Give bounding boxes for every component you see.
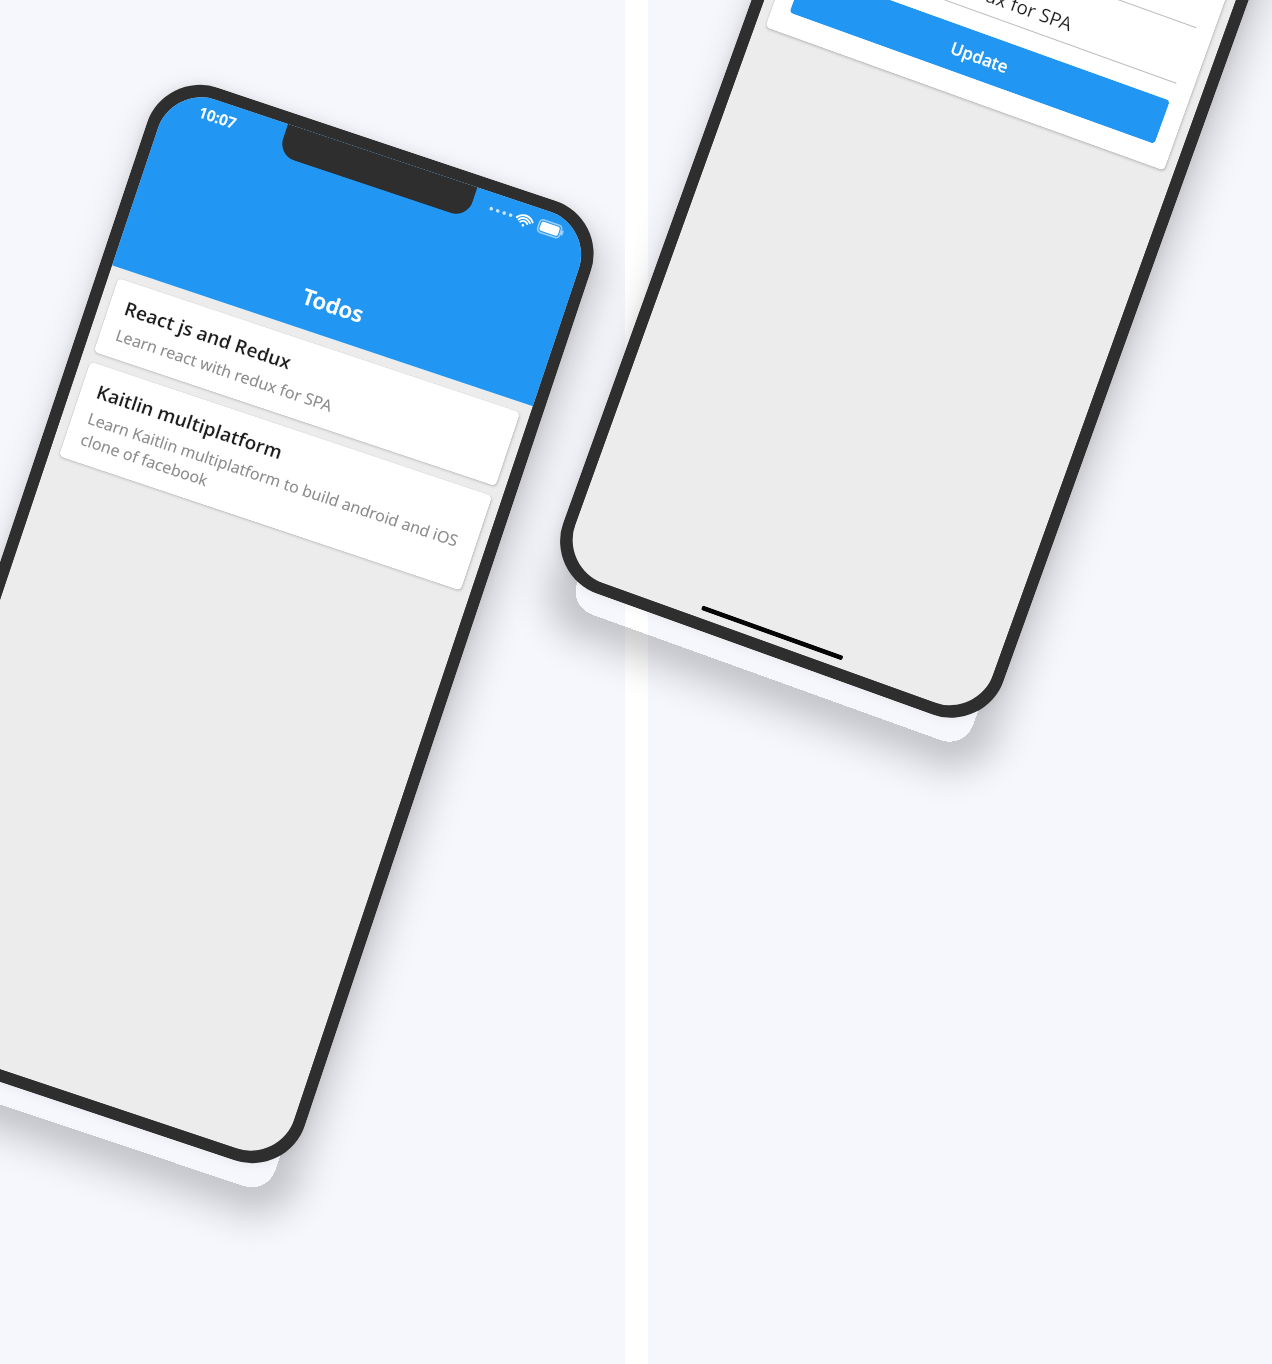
staticText: Learn Kaitlin multiplatform to build and… xyxy=(78,407,464,573)
button[interactable]: Update xyxy=(789,0,1170,144)
staticText: React js and Redux xyxy=(121,295,295,375)
button[interactable]: Kaitlin multiplatform xyxy=(59,361,492,591)
staticText: Learn react with redux for SPA xyxy=(113,324,335,417)
button[interactable]: Todo xyxy=(831,0,1214,28)
staticText: Kaitlin multiplatform xyxy=(93,379,286,465)
staticText: 10:07 xyxy=(196,102,239,133)
staticText: Todos xyxy=(299,280,368,329)
button[interactable]: Description xyxy=(811,0,1194,84)
staticText: Update xyxy=(947,36,1012,78)
staticText: Learn react with redux for SPA xyxy=(813,0,1076,37)
button[interactable]: React js and Redux xyxy=(93,278,520,486)
